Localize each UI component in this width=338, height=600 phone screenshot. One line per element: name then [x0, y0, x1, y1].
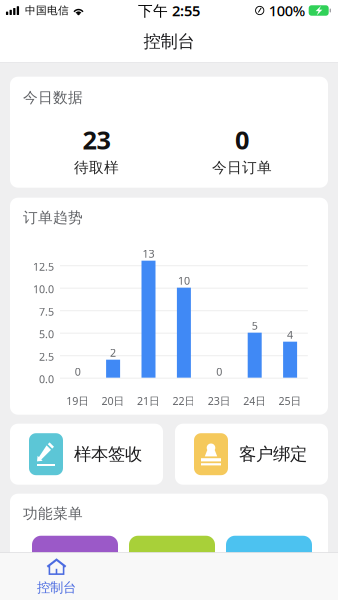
staticText: 24日 — [243, 394, 266, 408]
staticText: 今日订单 — [212, 159, 272, 177]
staticText: 中国电信 — [25, 4, 69, 17]
staticText: 23日 — [208, 394, 231, 408]
staticText: 客户绑定 — [239, 444, 307, 465]
staticText: 7.5 — [39, 305, 54, 319]
staticText: 0 — [75, 365, 81, 379]
staticText: 控制台 — [37, 579, 76, 596]
staticText: 4 — [287, 328, 293, 342]
staticText: 5 — [252, 319, 258, 333]
staticText: 2.5 — [39, 350, 54, 364]
staticText: 25日 — [279, 394, 302, 408]
staticText: 20日 — [102, 394, 125, 408]
staticText: 100% — [269, 1, 305, 20]
staticText: 今日数据 — [23, 89, 83, 107]
staticText: 2 — [110, 346, 116, 360]
staticText: 13 — [142, 247, 154, 261]
staticText: 0 — [216, 365, 222, 379]
staticText: 5.0 — [39, 327, 54, 341]
staticText: 10 — [178, 274, 190, 288]
staticText: 待取样 — [74, 159, 119, 177]
staticText: 22日 — [172, 394, 195, 408]
button[interactable]: 样本签收 — [10, 424, 163, 485]
staticText: 10.0 — [33, 282, 54, 296]
staticText: 样本签收 — [74, 444, 142, 465]
staticText: 0 — [235, 123, 249, 156]
staticText: 12.5 — [33, 260, 54, 274]
staticText: 控制台 — [143, 31, 194, 52]
staticText: 0.0 — [39, 372, 54, 386]
staticText: 21日 — [137, 394, 160, 408]
staticText: 23 — [82, 123, 110, 156]
staticText: 订单趋势 — [23, 209, 83, 227]
button[interactable]: 控制台 — [0, 553, 113, 600]
staticText: 下午 2:55 — [138, 1, 200, 20]
staticText: 功能菜单 — [23, 505, 83, 523]
button[interactable]: 客户绑定 — [175, 424, 328, 485]
staticText: 19日 — [66, 394, 89, 408]
